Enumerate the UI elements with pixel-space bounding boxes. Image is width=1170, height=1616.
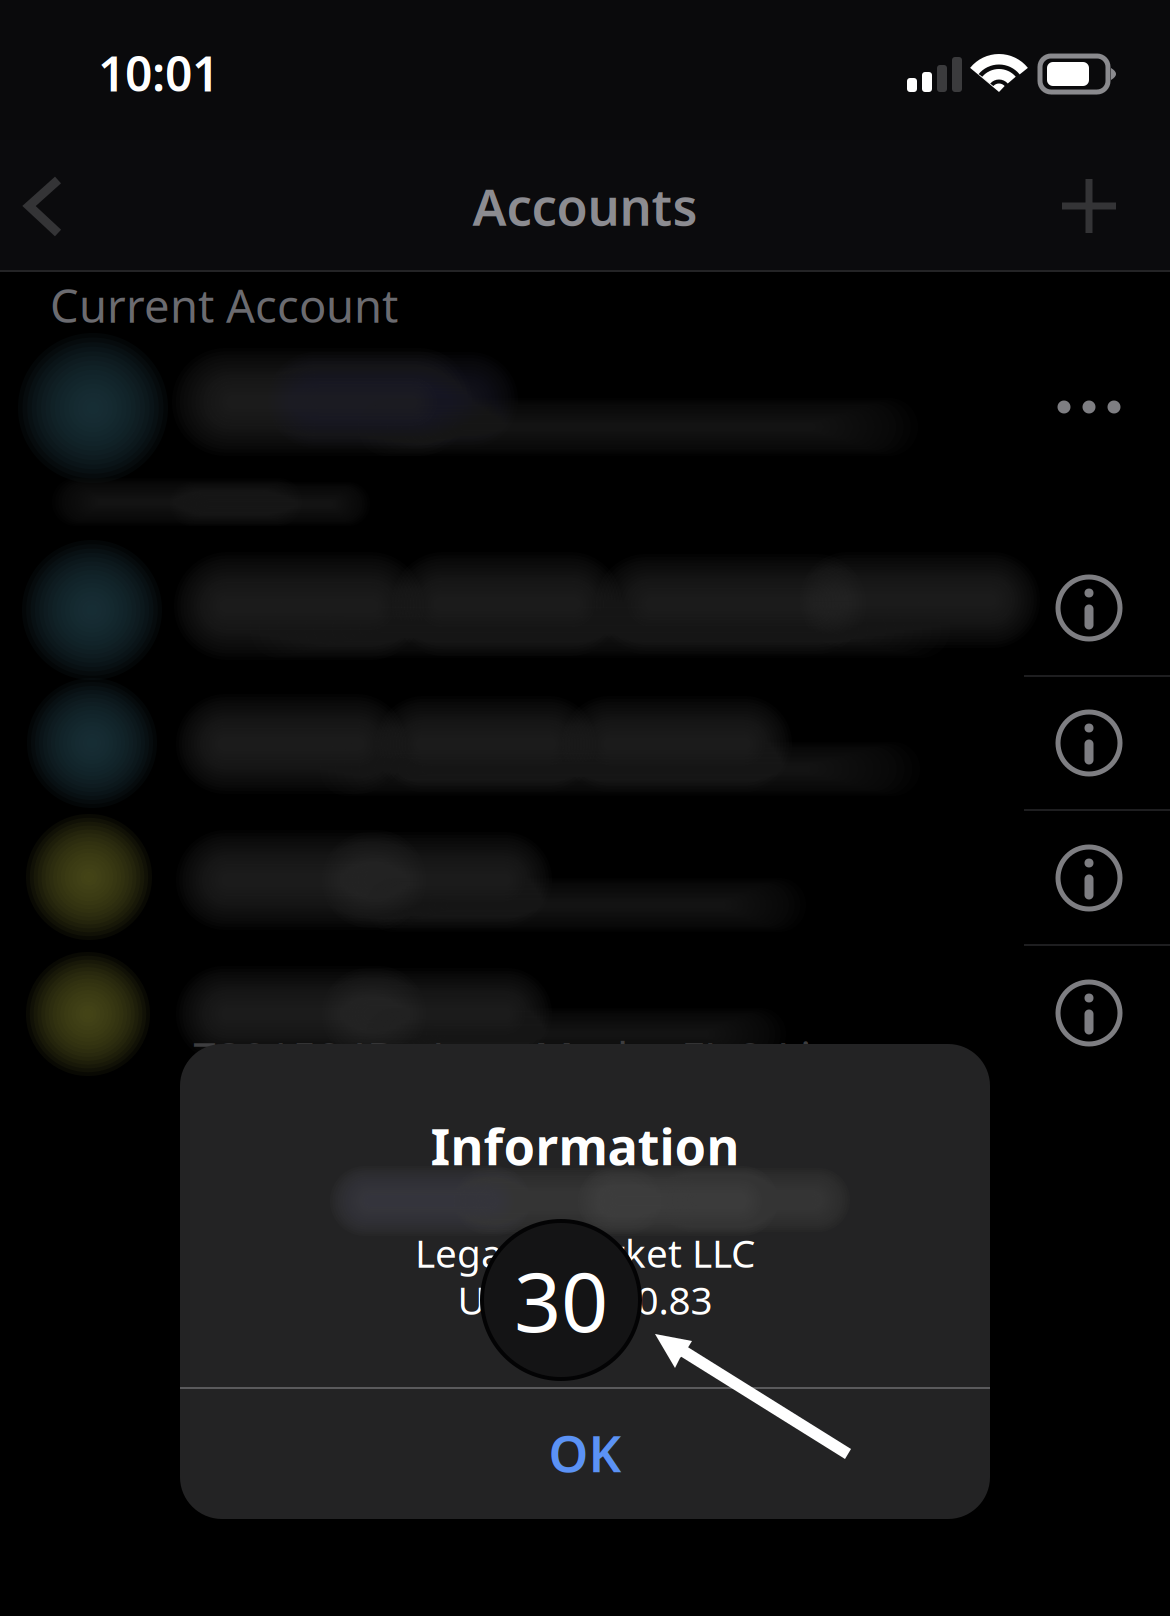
staticText: Information: [430, 1112, 739, 1179]
staticText: Current Account: [50, 275, 398, 335]
button[interactable]: Information: [1034, 688, 1144, 798]
staticText: Accounts: [472, 172, 697, 240]
staticText: Legacy Market LLC: [415, 1227, 755, 1278]
button[interactable]: More options: [1029, 352, 1149, 462]
button[interactable]: Information: [1034, 958, 1144, 1068]
button[interactable]: Information: [1034, 553, 1144, 663]
staticText: 10:01: [98, 41, 219, 105]
button[interactable]: Back: [14, 148, 134, 268]
staticText: 7301524B - LegoMarketFL 2-Live: [192, 1028, 858, 1086]
staticText: US$ 30 000.83: [457, 1274, 712, 1325]
staticText: 30: [514, 1245, 608, 1355]
button[interactable]: Add account: [1029, 148, 1149, 268]
staticText: OK: [548, 1419, 621, 1486]
button[interactable]: Information: [1034, 823, 1144, 933]
button[interactable]: OK: [180, 1386, 990, 1519]
